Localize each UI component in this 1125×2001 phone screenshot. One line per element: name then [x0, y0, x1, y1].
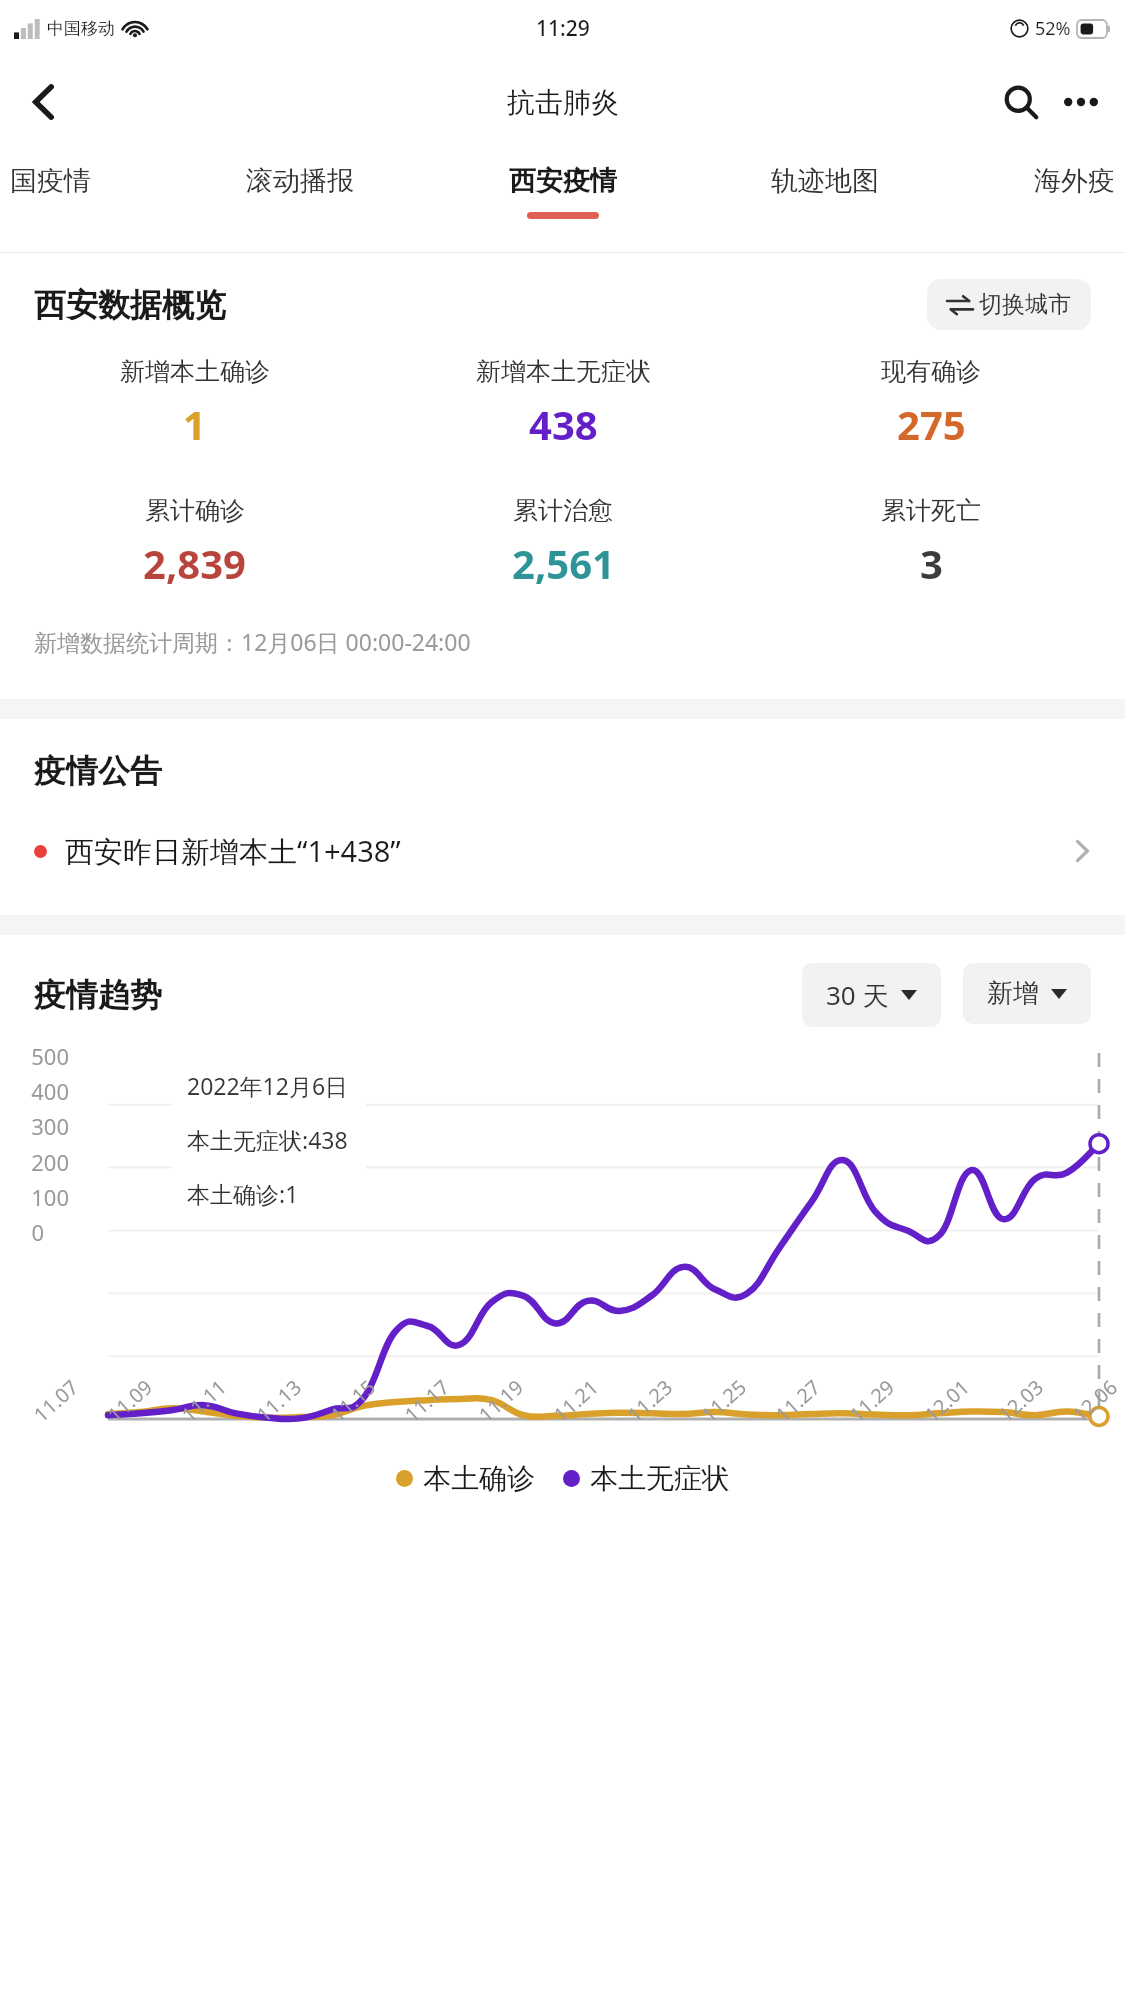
button[interactable]: Search	[993, 74, 1049, 130]
staticText: 轨迹地图	[771, 164, 879, 198]
staticText: 新增数据统计周期：12月06日 00:00-24:00	[34, 626, 471, 657]
staticText: 11.07	[28, 1373, 84, 1428]
staticText: 3	[920, 536, 943, 590]
staticText: 11:29	[536, 14, 590, 43]
button[interactable]: 现有确诊	[747, 354, 1115, 453]
staticText: 西安昨日新增本土“1+438”	[65, 831, 1073, 871]
staticText: 200	[31, 1147, 69, 1177]
staticText: 国疫情	[10, 164, 91, 198]
staticText: 11.09	[102, 1373, 158, 1428]
staticText: 11.15	[325, 1373, 381, 1428]
staticText: 11.25	[696, 1373, 752, 1428]
staticText: 400	[31, 1076, 69, 1106]
staticText: 中国移动	[47, 18, 115, 39]
button[interactable]: Back	[16, 74, 72, 130]
button[interactable]: 30 天	[802, 963, 941, 1027]
staticText: 30 天	[826, 977, 889, 1013]
button[interactable]: 切换城市	[927, 279, 1091, 330]
staticText: 11.23	[622, 1373, 678, 1428]
staticText: 12.06	[1067, 1373, 1123, 1428]
staticText: 11.17	[399, 1373, 455, 1428]
staticText: 本土确诊	[423, 1461, 535, 1496]
button[interactable]: 累计死亡	[747, 493, 1115, 592]
button[interactable]: 累计确诊	[10, 493, 379, 592]
staticText: 500	[31, 1041, 69, 1071]
button[interactable]: 新增本土确诊	[10, 354, 379, 453]
button[interactable]: 西安疫情	[499, 160, 627, 223]
staticText: 275	[897, 397, 966, 451]
button[interactable]: 新增	[963, 963, 1091, 1024]
staticText: 11.13	[251, 1373, 307, 1428]
staticText: 累计确诊	[145, 495, 245, 526]
staticText: 西安疫情	[509, 164, 617, 198]
staticText: 11.11	[176, 1373, 232, 1428]
staticText: 海外疫	[1034, 164, 1115, 198]
staticText: 本土确诊:1	[187, 1178, 299, 1209]
staticText: 疫情趋势	[34, 975, 162, 1015]
staticText: 1	[183, 397, 206, 451]
staticText: 12.01	[919, 1373, 975, 1428]
button[interactable]: 海外疫	[1024, 160, 1125, 223]
staticText: 本土无症状:438	[187, 1124, 348, 1155]
staticText: 2,839	[143, 536, 246, 590]
staticText: 11.27	[770, 1373, 826, 1428]
staticText: 疫情公告	[34, 751, 162, 791]
button[interactable]: 国疫情	[0, 160, 101, 223]
staticText: 100	[31, 1182, 69, 1212]
staticText: 11.19	[473, 1373, 529, 1428]
staticText: 本土无症状	[590, 1461, 730, 1496]
staticText: 2022年12月6日	[187, 1070, 349, 1101]
staticText: 西安数据概览	[34, 285, 226, 325]
button[interactable]: 轨迹地图	[761, 160, 889, 223]
staticText: 300	[31, 1111, 69, 1141]
staticText: 抗击肺炎	[507, 85, 619, 120]
staticText: 11.21	[548, 1373, 604, 1428]
staticText: 12.03	[993, 1373, 1049, 1428]
staticText: 52%	[1035, 16, 1071, 41]
staticText: 新增本土无症状	[476, 356, 651, 387]
staticText: 新增本土确诊	[120, 356, 270, 387]
button[interactable]: 新增本土无症状	[379, 354, 747, 453]
staticText: 滚动播报	[246, 164, 354, 198]
staticText: 0	[31, 1217, 44, 1247]
button[interactable]: 西安昨日新增本土“1+438”	[0, 825, 1125, 877]
staticText: 现有确诊	[881, 356, 981, 387]
button[interactable]: 滚动播报	[236, 160, 364, 223]
button[interactable]: 累计治愈	[379, 493, 747, 592]
staticText: 2,561	[512, 536, 615, 590]
staticText: 新增	[987, 977, 1039, 1010]
staticText: 切换城市	[979, 290, 1071, 319]
staticText: 累计治愈	[513, 495, 613, 526]
staticText: 438	[529, 397, 598, 451]
staticText: 11.29	[844, 1373, 900, 1428]
button[interactable]: More options	[1055, 76, 1107, 128]
staticText: 累计死亡	[881, 495, 981, 526]
